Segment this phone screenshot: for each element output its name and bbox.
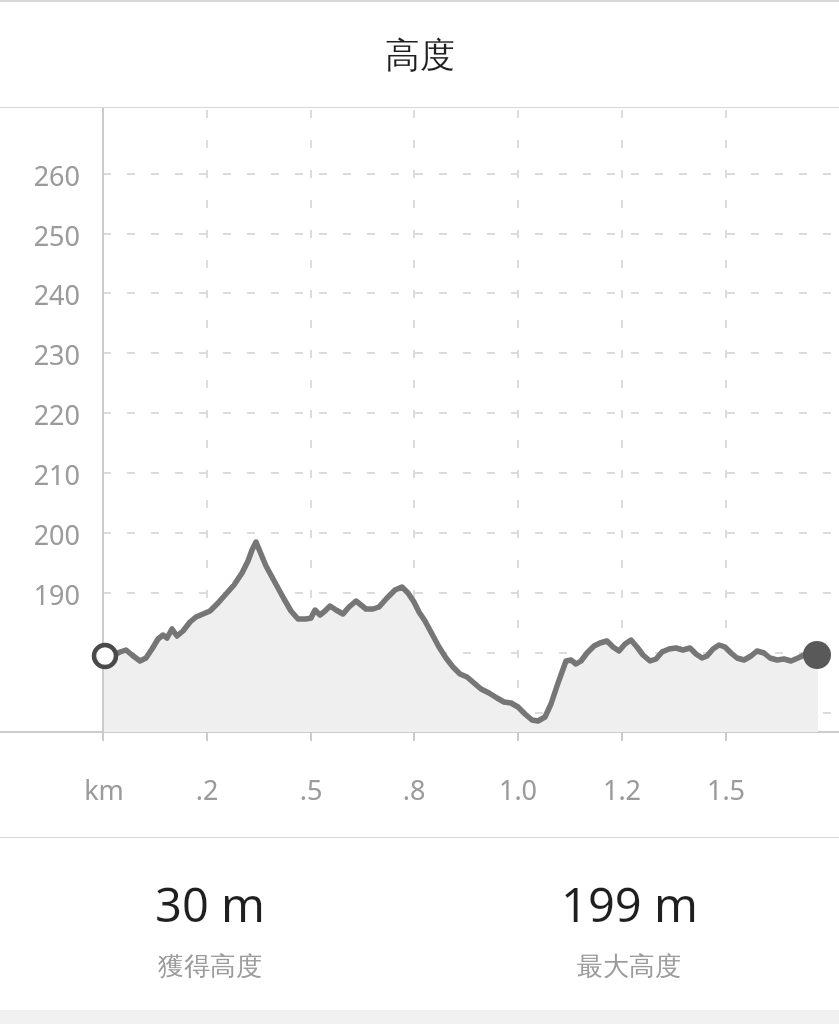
button[interactable]: 260	[0, 108, 839, 837]
button[interactable]: 199 m	[419, 838, 839, 1010]
staticText: 1.0	[468, 771, 568, 808]
staticText: 199 m	[561, 872, 698, 936]
staticText: 最大高度	[577, 950, 681, 983]
staticText: .2	[157, 771, 257, 808]
staticText: .8	[364, 771, 464, 808]
staticText: 30 m	[155, 872, 265, 936]
staticText: 190	[0, 576, 80, 613]
staticText: 1.2	[572, 771, 672, 808]
staticText: 200	[0, 516, 80, 553]
staticText: 高度	[385, 33, 455, 77]
button[interactable]: 高度	[0, 2, 839, 107]
staticText: .5	[261, 771, 361, 808]
staticText: 250	[0, 217, 80, 254]
button[interactable]: 30 m	[0, 838, 419, 1010]
staticText: 220	[0, 396, 80, 433]
staticText: 210	[0, 456, 80, 493]
staticText: km	[54, 771, 154, 808]
staticText: 240	[0, 276, 80, 313]
staticText: 260	[0, 157, 80, 194]
staticText: 1.5	[676, 771, 776, 808]
staticText: 230	[0, 336, 80, 373]
staticText: 獲得高度	[158, 950, 262, 983]
